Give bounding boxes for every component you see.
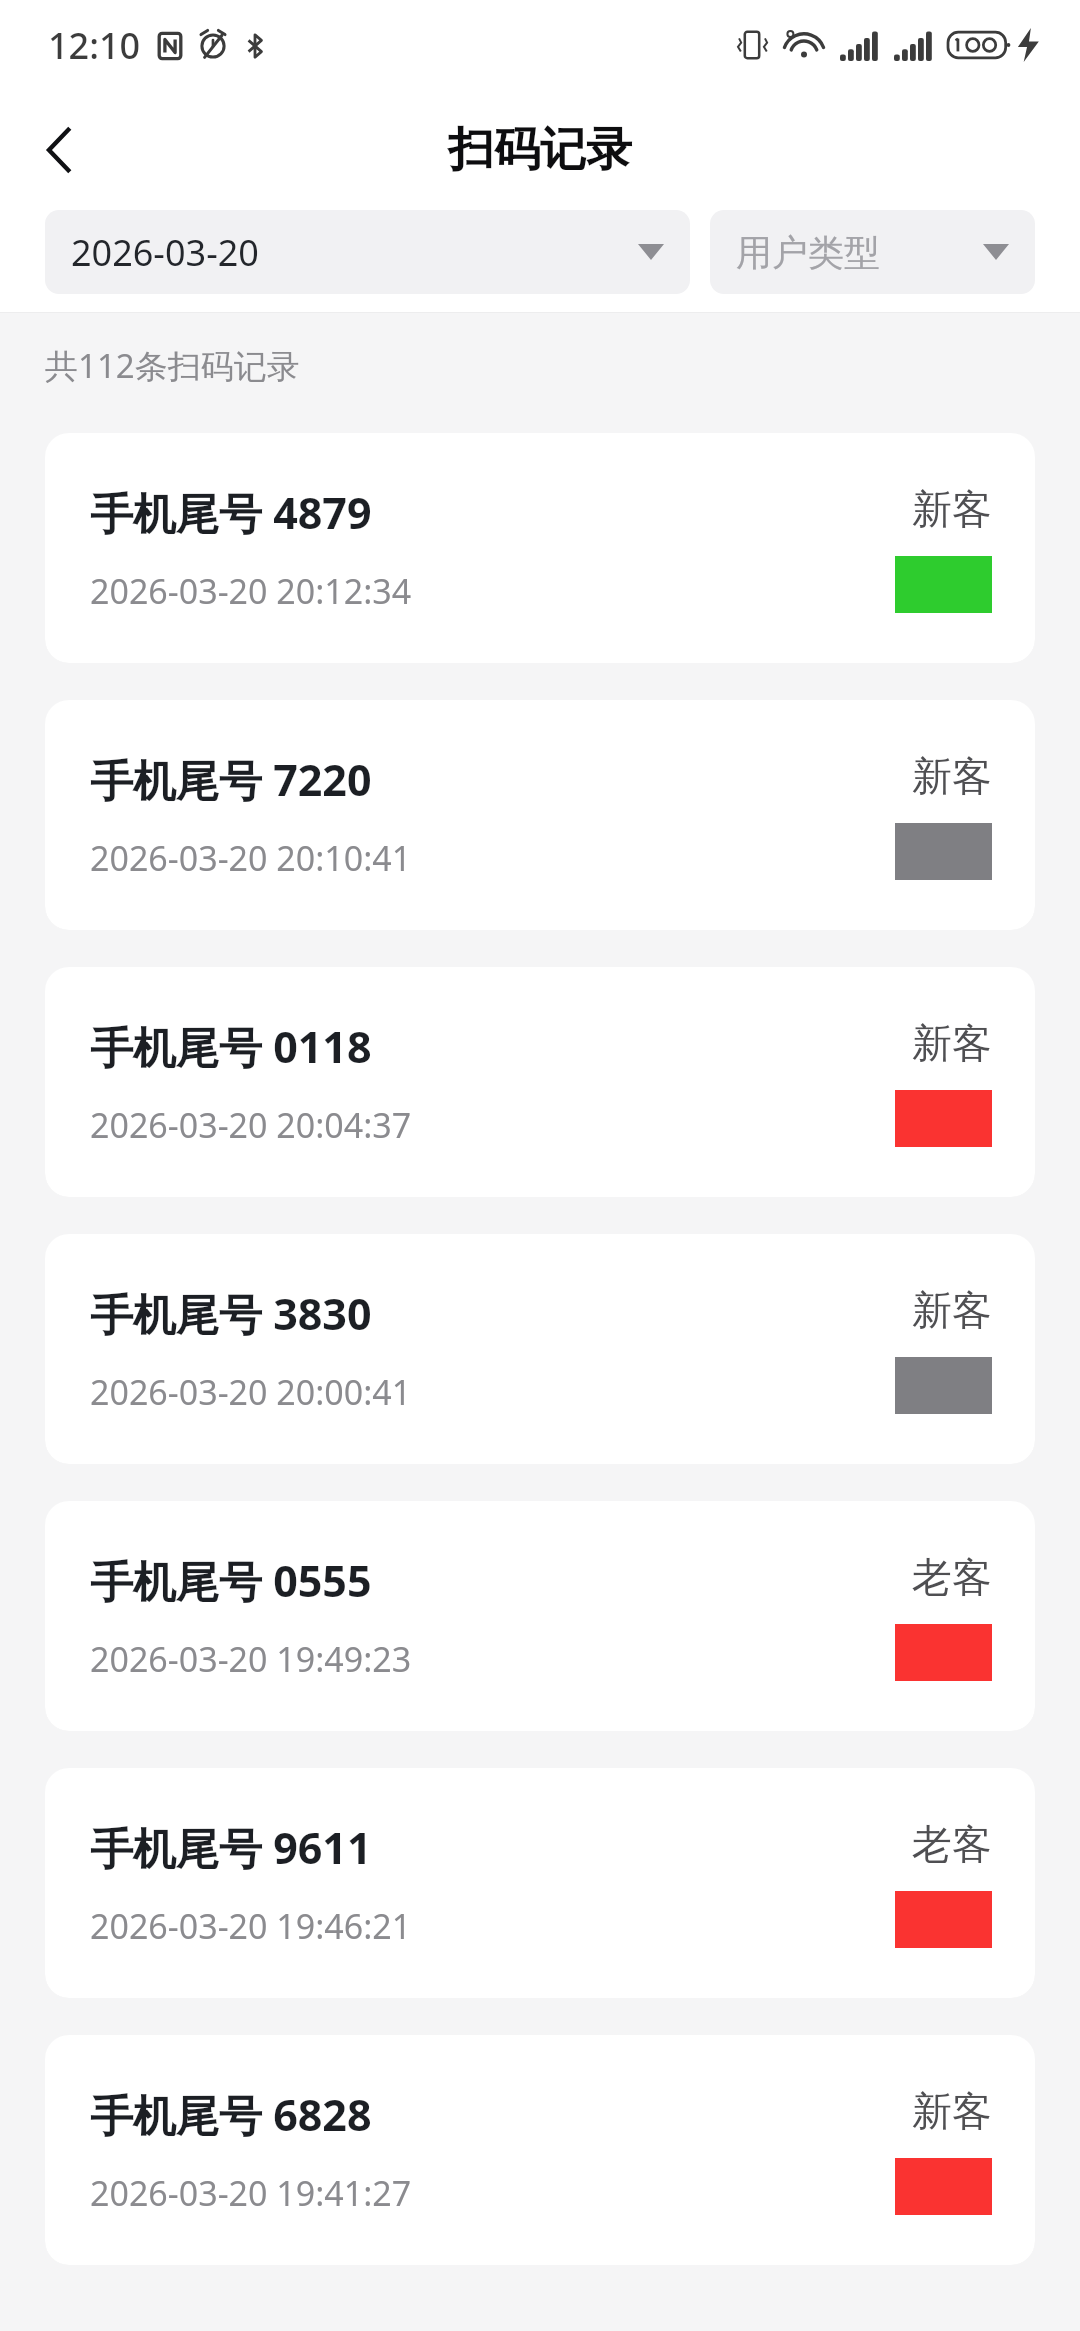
staticText: 共112条扫码记录: [45, 343, 300, 388]
staticText: 2026-03-20 19:46:21: [90, 1903, 412, 1949]
staticText: 2026-03-20 20:12:34: [90, 568, 412, 614]
button[interactable]: 手机尾号 0555: [45, 1501, 1035, 1731]
staticText: 2026-03-20 20:10:41: [90, 835, 412, 881]
staticText: 2026-03-20 20:04:37: [90, 1102, 412, 1148]
staticText: 手机尾号 6828: [90, 2085, 372, 2144]
staticText: 新客: [912, 1018, 992, 1068]
button[interactable]: 手机尾号 4879: [45, 433, 1035, 663]
button[interactable]: 手机尾号 7220: [45, 700, 1035, 930]
staticText: 新客: [912, 751, 992, 801]
staticText: 新客: [912, 2086, 992, 2136]
staticText: 手机尾号 4879: [90, 483, 372, 542]
staticText: 扫码记录: [448, 121, 632, 179]
button[interactable]: 手机尾号 6828: [45, 2035, 1035, 2265]
staticText: 2026-03-20: [71, 228, 259, 277]
staticText: 手机尾号 9611: [90, 1818, 372, 1877]
staticText: 手机尾号 0118: [90, 1017, 372, 1076]
staticText: 手机尾号 3830: [90, 1284, 372, 1343]
staticText: 老客: [912, 1552, 992, 1602]
staticText: 老客: [912, 1819, 992, 1869]
button[interactable]: 2026-03-20: [45, 210, 690, 294]
staticText: 新客: [912, 1285, 992, 1335]
staticText: 2026-03-20 20:00:41: [90, 1369, 412, 1415]
staticText: 手机尾号 0555: [90, 1551, 372, 1610]
staticText: 新客: [912, 484, 992, 534]
staticText: 12:10: [48, 21, 141, 70]
staticText: 手机尾号 7220: [90, 750, 372, 809]
button[interactable]: 返回: [12, 102, 108, 198]
staticText: 2026-03-20 19:49:23: [90, 1636, 412, 1682]
staticText: 2026-03-20 19:41:27: [90, 2170, 412, 2216]
staticText: 用户类型: [736, 230, 880, 275]
button[interactable]: 手机尾号 9611: [45, 1768, 1035, 1998]
button[interactable]: 手机尾号 0118: [45, 967, 1035, 1197]
button[interactable]: 用户类型: [710, 210, 1035, 294]
button[interactable]: 手机尾号 3830: [45, 1234, 1035, 1464]
